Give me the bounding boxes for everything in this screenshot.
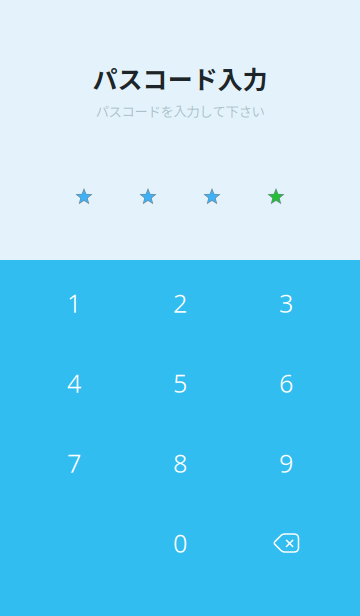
staticText: 6 (279, 366, 293, 400)
staticText: 0 (173, 526, 187, 560)
button[interactable]: 6 (233, 343, 339, 423)
button[interactable]: 4 (21, 343, 127, 423)
staticText: パスコード入力 (92, 60, 267, 96)
button[interactable]: 1 (21, 263, 127, 343)
button[interactable]: Delete (233, 503, 339, 583)
button[interactable]: 0 (127, 503, 233, 583)
staticText: 3 (279, 286, 293, 320)
staticText: パスコードを入力して下さい (95, 101, 264, 121)
button[interactable]: 5 (127, 343, 233, 423)
staticText: 5 (173, 366, 187, 400)
staticText: 8 (173, 446, 187, 480)
button[interactable]: 2 (127, 263, 233, 343)
staticText: 4 (67, 366, 81, 400)
staticText: 9 (279, 446, 293, 480)
staticText: 1 (67, 286, 81, 320)
staticText: 7 (67, 446, 81, 480)
button[interactable]: 8 (127, 423, 233, 503)
button[interactable]: 7 (21, 423, 127, 503)
button[interactable]: 3 (233, 263, 339, 343)
staticText: 2 (173, 286, 187, 320)
button[interactable]: 9 (233, 423, 339, 503)
